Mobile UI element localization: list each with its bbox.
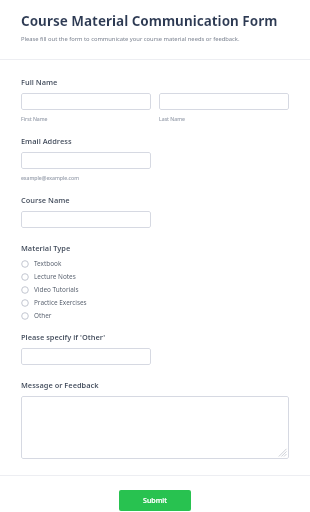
button[interactable]: Please specify if Other	[21, 348, 151, 365]
staticText: Other	[34, 311, 52, 320]
staticText: Course Material Communication Form	[21, 12, 278, 30]
button[interactable]: Last Name	[159, 93, 289, 110]
staticText: Lecture Notes	[34, 272, 76, 281]
button[interactable]: Video Tutorials	[21, 283, 289, 296]
staticText: Last Name	[159, 115, 185, 122]
staticText: Practice Exercises	[34, 298, 87, 307]
staticText: Message or Feedback	[21, 380, 99, 390]
staticText: Please fill out the form to communicate …	[21, 35, 240, 43]
staticText: Email Address	[21, 136, 72, 146]
staticText: Full Name	[21, 77, 58, 87]
staticText: Video Tutorials	[34, 285, 79, 294]
staticText: Course Name	[21, 195, 70, 205]
staticText: First Name	[21, 115, 48, 122]
button[interactable]: Email Address	[21, 152, 151, 169]
staticText: Please specify if 'Other'	[21, 332, 106, 342]
staticText: Material Type	[21, 243, 71, 253]
staticText: example@example.com	[21, 174, 80, 181]
button[interactable]: First Name	[21, 93, 151, 110]
staticText: Textbook	[34, 259, 62, 268]
button[interactable]: Other	[21, 309, 289, 322]
button[interactable]: Course Name	[21, 211, 151, 228]
button[interactable]: Textbook	[21, 257, 289, 270]
button[interactable]: Message or Feedback	[21, 396, 289, 459]
button[interactable]: Submit	[119, 490, 191, 511]
button[interactable]: Lecture Notes	[21, 270, 289, 283]
button[interactable]: Practice Exercises	[21, 296, 289, 309]
staticText: Submit	[143, 496, 167, 506]
